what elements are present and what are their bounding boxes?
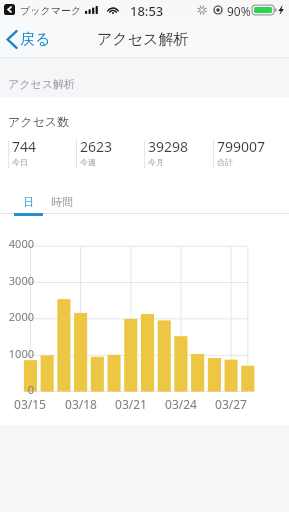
staticText: 合計 [217,157,233,167]
staticText: 03/27 [208,396,254,412]
staticText: 1000 [0,346,34,361]
staticText: 3000 [0,273,34,288]
staticText: 戻る [20,30,51,49]
staticText: 90% [227,3,251,19]
button[interactable]: 時間 [48,184,75,213]
staticText: アクセス解析 [8,77,76,91]
staticText: 03/24 [158,396,204,412]
staticText: 今月 [148,157,164,167]
staticText: 03/15 [7,396,53,412]
button[interactable]: 戻る [0,26,59,53]
staticText: アクセス数 [8,114,70,129]
button[interactable]: 39298 [144,137,213,167]
staticText: 39298 [148,137,189,156]
staticText: 2623 [80,137,113,156]
staticText: 03/21 [108,396,154,412]
staticText: ブックマーク [20,4,82,17]
staticText: 03/18 [58,396,104,412]
staticText: 799007 [217,137,266,156]
staticText: 時間 [51,195,73,209]
button[interactable]: 日 [14,184,43,213]
staticText: 今日 [12,157,28,167]
staticText: 4000 [0,236,34,251]
staticText: 日 [23,195,34,209]
staticText: 18:53 [130,2,164,20]
staticText: 0 [0,382,34,397]
button[interactable]: 2623 [76,137,144,167]
button[interactable]: 799007 [213,137,282,167]
staticText: アクセス解析 [97,30,189,49]
staticText: 2000 [0,309,34,324]
staticText: 今週 [80,157,96,167]
button[interactable]: Back to Bookmark [4,4,15,15]
staticText: 744 [12,137,37,156]
button[interactable]: 744 [8,137,76,167]
